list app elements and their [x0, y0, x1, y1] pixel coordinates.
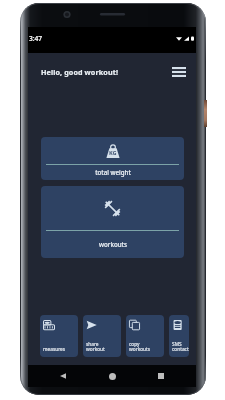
button[interactable]: SMS contacts	[169, 315, 189, 357]
button[interactable]: Open navigation menu	[171, 64, 187, 80]
staticText: KG	[109, 149, 117, 157]
button[interactable]: Back	[54, 367, 72, 385]
staticText: measures	[43, 346, 77, 353]
button[interactable]: Recent apps	[152, 367, 170, 385]
button[interactable]: workouts	[41, 186, 184, 258]
button[interactable]: measures	[40, 315, 78, 357]
staticText: workouts	[99, 240, 127, 248]
staticText: SMS contacts	[172, 341, 189, 353]
button[interactable]: Home	[103, 367, 121, 385]
staticText: 3:47	[29, 34, 43, 43]
button[interactable]: copy workouts	[126, 315, 164, 357]
staticText: share workout	[86, 341, 120, 353]
staticText: Hello, good workout!	[41, 67, 119, 77]
staticText: copy workouts	[129, 341, 163, 353]
button[interactable]: share workout	[83, 315, 121, 357]
staticText: total weight	[95, 168, 131, 176]
button[interactable]: KG	[41, 137, 184, 180]
